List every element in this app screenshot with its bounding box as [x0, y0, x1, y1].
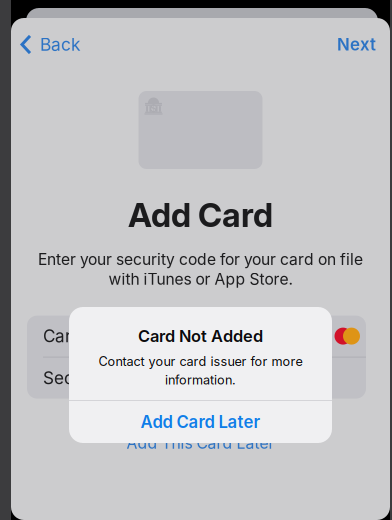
staticText: $ [150, 102, 157, 115]
staticText: Card Not Added [138, 326, 263, 346]
staticText: Card Number [43, 326, 150, 346]
button[interactable]: Next [323, 18, 390, 71]
staticText: Back [40, 34, 81, 55]
staticText: Enter your security code for your card o… [38, 250, 363, 269]
staticText: with iTunes or App Store. [108, 270, 292, 289]
button[interactable]: Add Card Later [69, 401, 332, 443]
staticText: information. [165, 372, 236, 387]
button[interactable]: Add This Card Later [126, 434, 274, 453]
staticText: Contact your card issuer for more [98, 354, 302, 369]
staticText: Next [337, 34, 376, 55]
button[interactable]: Back [11, 18, 93, 71]
staticText: Add Card Later [140, 412, 260, 432]
staticText: Add This Card Later [126, 434, 274, 453]
staticText: Add Card [128, 195, 273, 235]
staticText: Security Code [43, 368, 158, 388]
